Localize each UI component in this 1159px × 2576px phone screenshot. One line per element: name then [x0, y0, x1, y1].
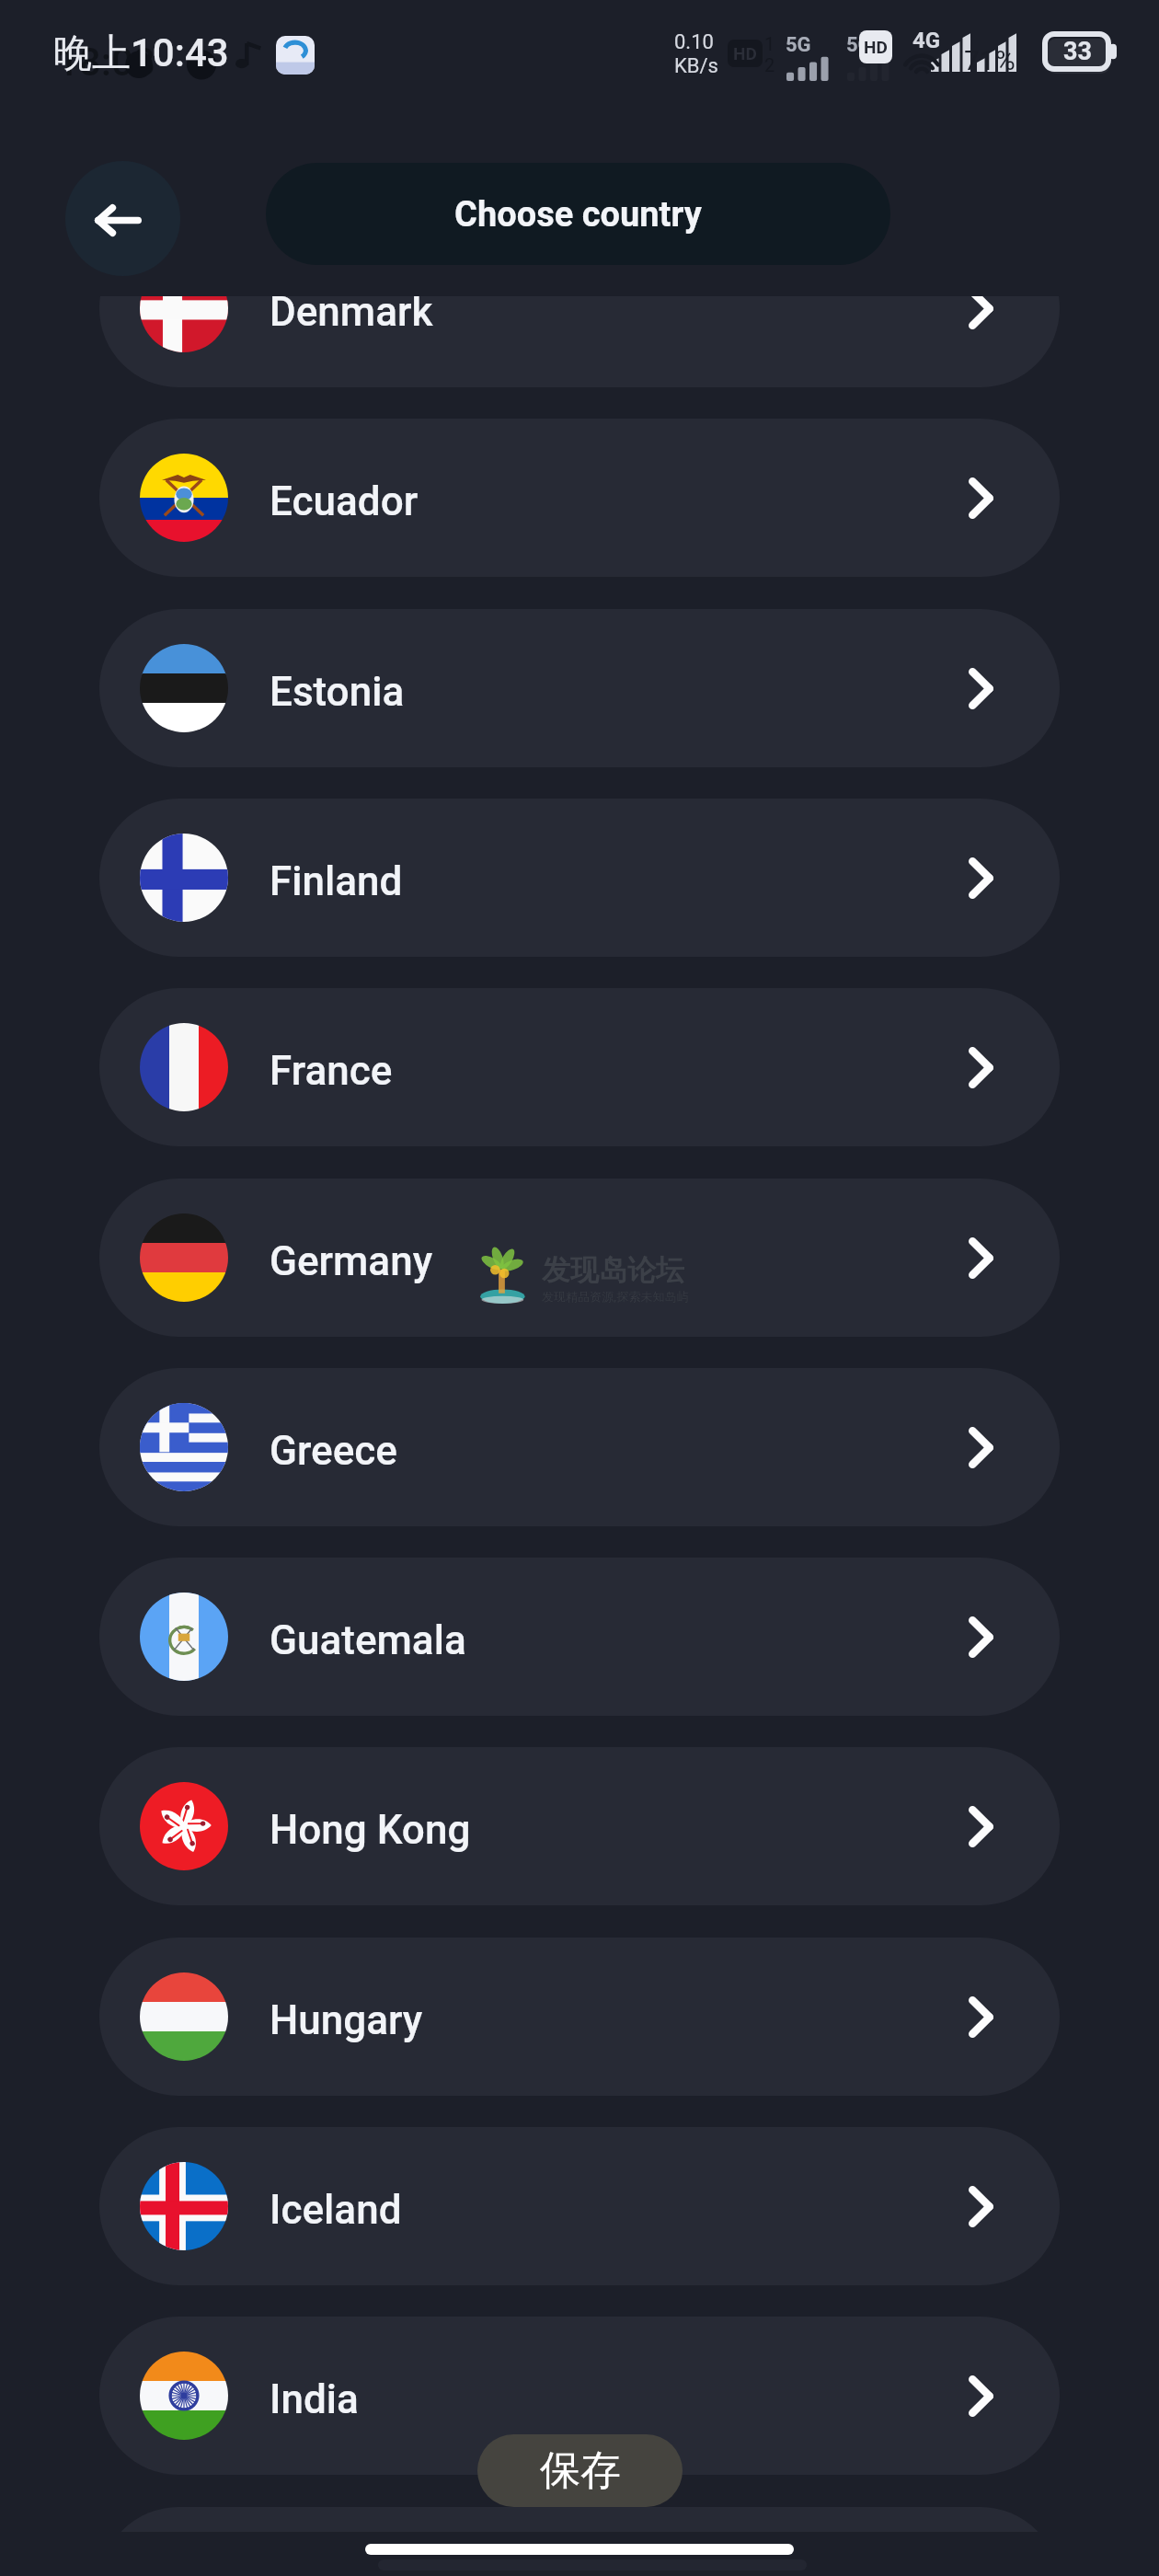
- button[interactable]: Greece: [99, 1368, 1060, 1526]
- button[interactable]: Hungary: [99, 1938, 1060, 2096]
- button[interactable]: Hong Kong: [99, 1747, 1060, 1905]
- staticText: 71%: [964, 44, 1016, 76]
- staticText: Iceland: [270, 2186, 402, 2234]
- button[interactable]: Choose country: [266, 163, 890, 265]
- staticText: Germany: [270, 1237, 433, 1285]
- button[interactable]: Estonia: [99, 609, 1060, 767]
- staticText: Choose country: [454, 194, 702, 236]
- staticText: 33: [1063, 37, 1092, 66]
- staticText: Hungary: [270, 1996, 423, 2044]
- staticText: 发现精品资源,探索未知岛屿: [542, 1288, 689, 1305]
- staticText: 0.10: [674, 30, 714, 54]
- staticText: Finland: [270, 857, 403, 905]
- staticText: Guatemala: [270, 1616, 466, 1664]
- staticText: KB/s: [674, 54, 718, 78]
- staticText: 5G: [786, 33, 811, 57]
- button[interactable]: Back: [65, 161, 180, 276]
- staticText: Greece: [270, 1427, 397, 1475]
- staticText: 发现岛论坛: [542, 1252, 684, 1288]
- button[interactable]: Germany: [99, 1179, 1060, 1337]
- staticText: 5G: [846, 33, 872, 57]
- staticText: HD: [733, 43, 757, 63]
- staticText: 4G: [912, 28, 941, 53]
- staticText: 晚上10:43: [53, 29, 229, 78]
- staticText: HD: [864, 37, 888, 57]
- staticText: France: [270, 1047, 393, 1095]
- staticText: Ecuador: [270, 477, 419, 525]
- button[interactable]: Ecuador: [99, 419, 1060, 577]
- button[interactable]: Finland: [99, 799, 1060, 957]
- button[interactable]: Indonesia: [99, 2507, 1060, 2532]
- staticText: Hong Kong: [270, 1806, 471, 1854]
- button[interactable]: France: [99, 988, 1060, 1146]
- button[interactable]: India: [99, 2317, 1060, 2475]
- button[interactable]: Guatemala: [99, 1558, 1060, 1716]
- button[interactable]: Iceland: [99, 2127, 1060, 2285]
- staticText: 保存: [540, 2445, 621, 2496]
- staticText: 2: [764, 54, 775, 75]
- button[interactable]: Denmark: [99, 296, 1060, 387]
- staticText: Denmark: [270, 296, 433, 336]
- staticText: 18:08: [57, 40, 155, 85]
- staticText: India: [270, 2375, 359, 2423]
- staticText: Estonia: [270, 668, 405, 716]
